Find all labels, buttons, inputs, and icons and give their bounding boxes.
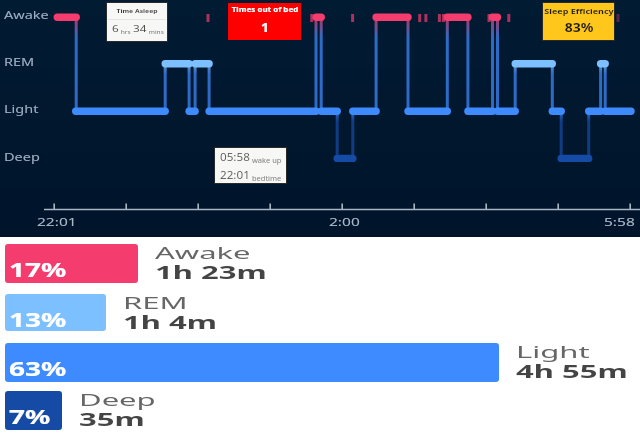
- staticText: REM: [123, 290, 188, 314]
- staticText: 4h 55m: [516, 359, 628, 383]
- staticText: 1: [228, 19, 301, 36]
- button[interactable]: Sleep Efficiency: [542, 2, 615, 41]
- button[interactable]: [5, 391, 62, 430]
- button[interactable]: Time Asleep: [106, 2, 168, 42]
- button[interactable]: 05:58: [214, 147, 287, 184]
- staticText: Times out of bed: [228, 5, 301, 14]
- staticText: Awake: [155, 240, 251, 263]
- button[interactable]: [5, 244, 138, 283]
- staticText: hrs: [119, 28, 133, 35]
- staticText: 13%: [9, 306, 67, 332]
- staticText: 35m: [79, 407, 145, 431]
- staticText: 63%: [9, 355, 67, 381]
- staticText: Deep: [4, 150, 40, 164]
- button[interactable]: Times out of bed: [228, 3, 301, 40]
- staticText: 2:00: [329, 214, 360, 229]
- staticText: Light: [516, 339, 590, 363]
- staticText: 1h 23m: [155, 260, 267, 284]
- staticText: 1h 4m: [123, 310, 217, 334]
- staticText: 17%: [9, 256, 67, 282]
- staticText: Light: [4, 102, 39, 116]
- staticText: REM: [4, 55, 35, 69]
- staticText: 6: [112, 22, 119, 34]
- staticText: wake up: [250, 156, 282, 164]
- staticText: 05:58: [220, 150, 250, 164]
- staticText: Deep: [79, 387, 156, 411]
- staticText: Time Asleep: [106, 8, 168, 15]
- staticText: bedtime: [250, 174, 282, 182]
- staticText: 34: [133, 22, 147, 34]
- staticText: Sleep Efficiency: [542, 6, 615, 16]
- staticText: 83%: [542, 19, 615, 36]
- staticText: 5:58: [604, 214, 635, 229]
- staticText: mins: [147, 28, 164, 35]
- staticText: Awake: [4, 8, 49, 22]
- button[interactable]: [5, 294, 106, 331]
- staticText: 7%: [9, 403, 51, 429]
- button[interactable]: [5, 343, 499, 382]
- staticText: 22:01: [37, 214, 77, 229]
- staticText: 22:01: [220, 168, 250, 182]
